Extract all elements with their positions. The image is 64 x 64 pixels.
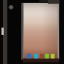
button[interactable]: Home screen [0, 0, 64, 64]
